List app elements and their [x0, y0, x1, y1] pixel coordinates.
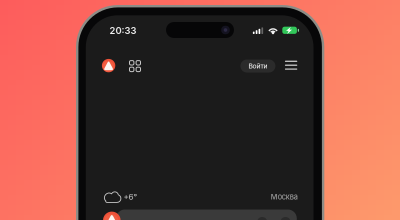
staticText: Москва: [271, 192, 298, 201]
button[interactable]: Search: [257, 217, 267, 220]
button[interactable]: Services: [126, 58, 143, 75]
staticText: Войти: [248, 62, 267, 70]
button[interactable]: Profile: [103, 212, 121, 220]
button[interactable]: +6°: [104, 191, 137, 202]
button[interactable]: Home: [99, 56, 118, 75]
staticText: 20:33: [110, 25, 137, 36]
button[interactable]: Войти: [240, 59, 275, 72]
button[interactable]: Cart: [280, 217, 290, 220]
staticText: +6°: [123, 192, 137, 202]
button[interactable]: Москва: [271, 192, 298, 201]
button[interactable]: Menu: [282, 58, 300, 73]
